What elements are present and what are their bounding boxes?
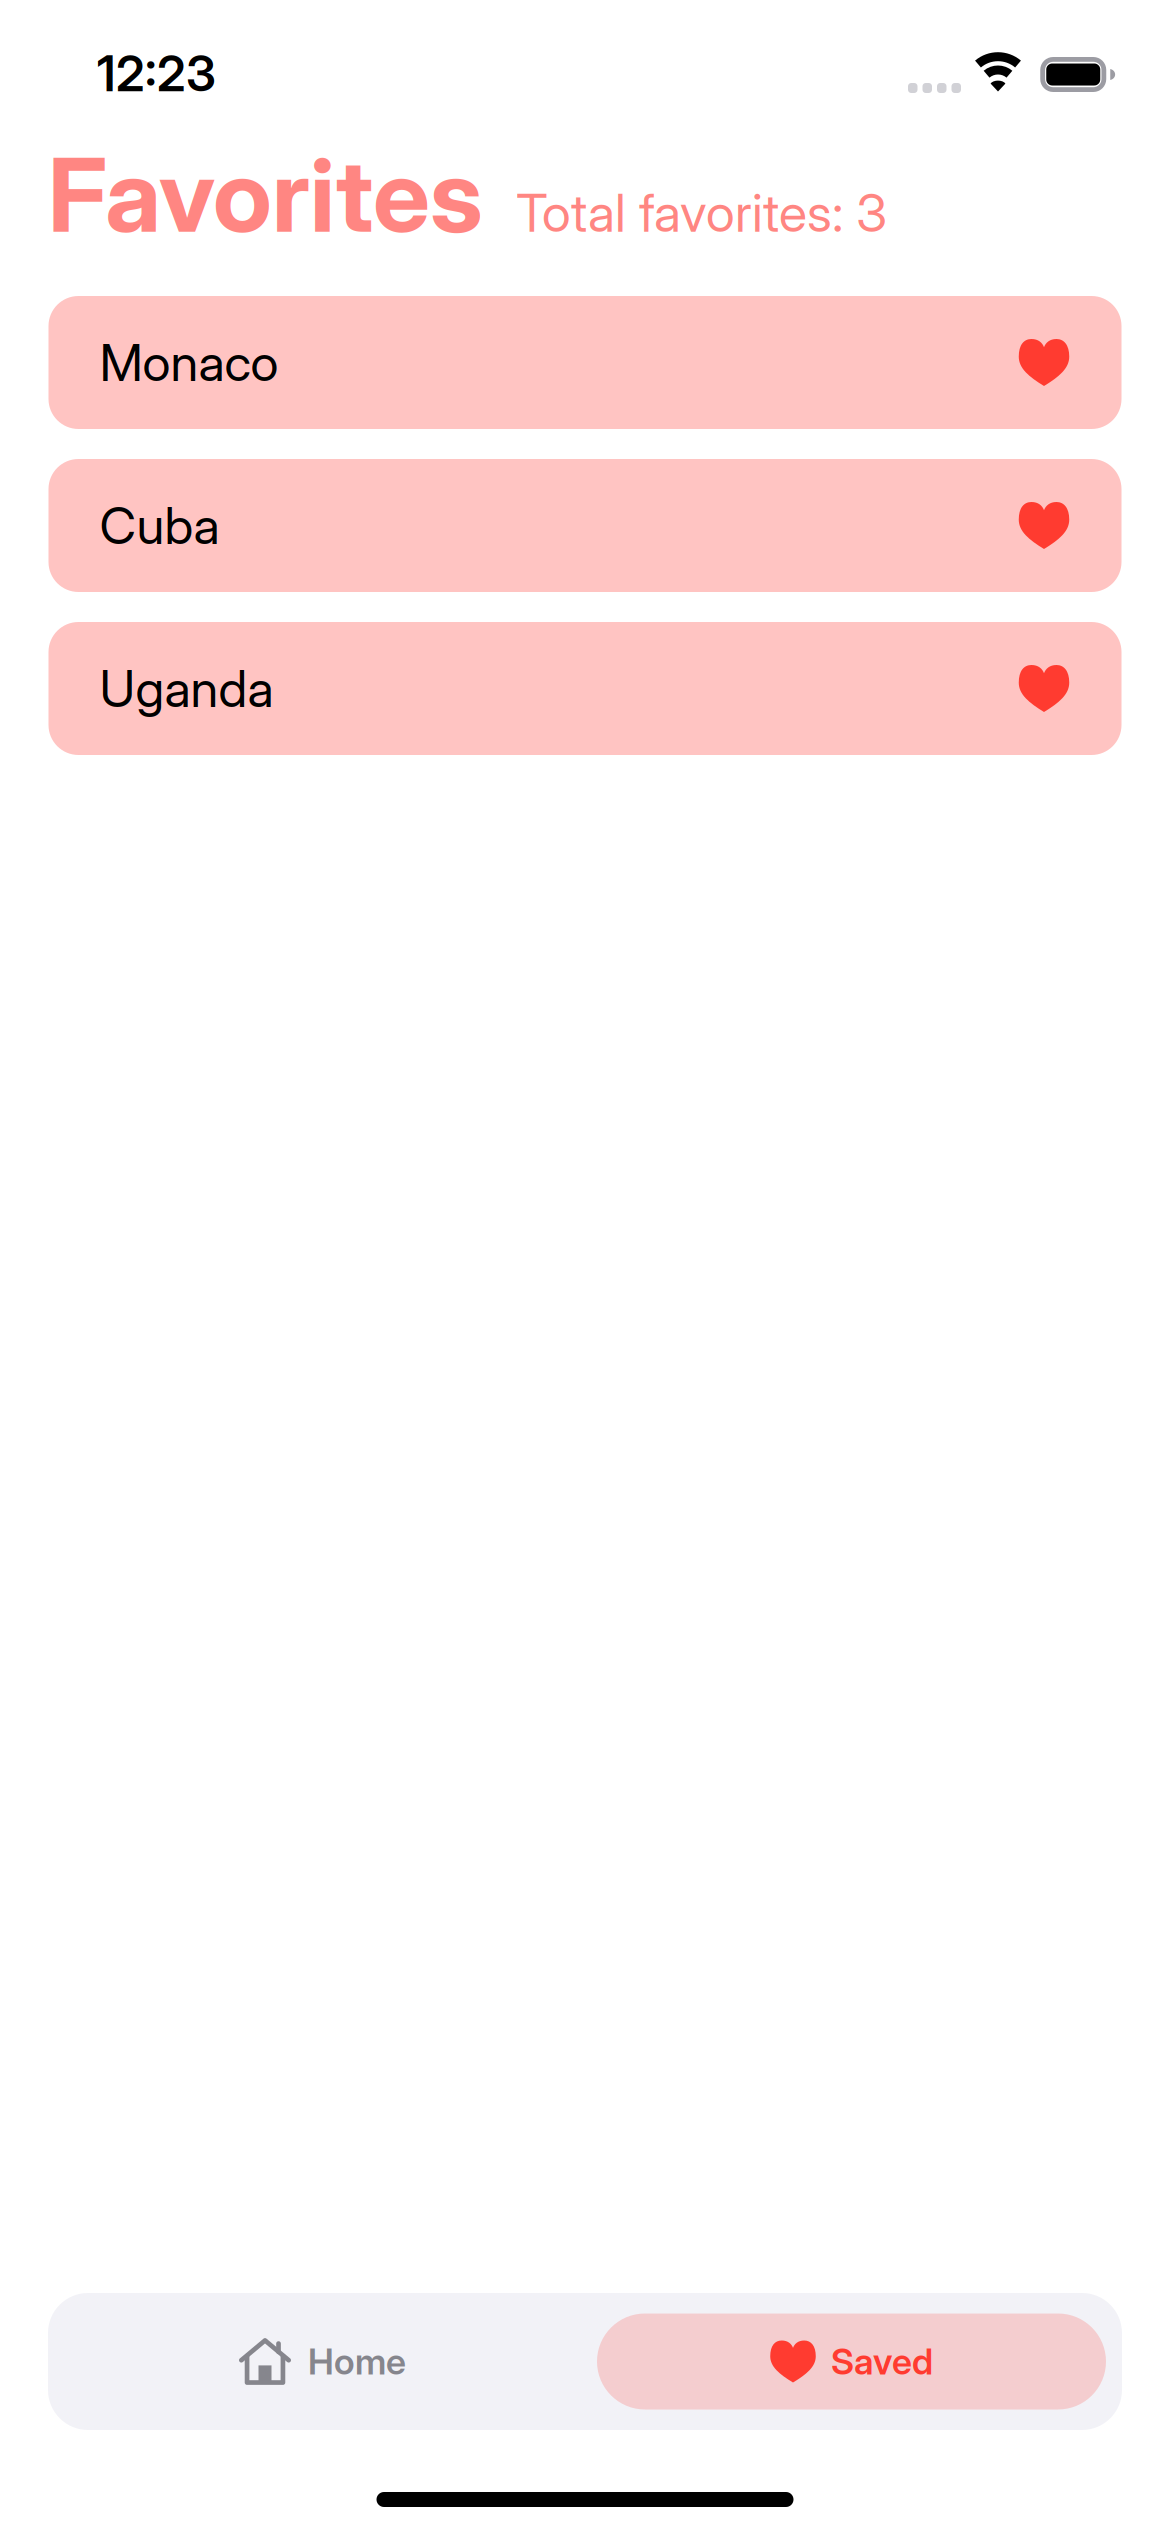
button[interactable]: Unfavorite Monaco: [1018, 339, 1069, 386]
button[interactable]: Saved: [597, 2313, 1106, 2409]
staticText: Uganda: [99, 658, 273, 719]
staticText: Home: [308, 2340, 406, 2383]
staticText: 12:23: [97, 44, 216, 103]
button[interactable]: Home: [48, 2313, 597, 2409]
button[interactable]: Cuba: [48, 459, 1121, 592]
staticText: Saved: [831, 2340, 933, 2383]
staticText: Cuba: [99, 495, 219, 556]
button[interactable]: Unfavorite Cuba: [1018, 502, 1069, 549]
button[interactable]: Uganda: [48, 622, 1121, 755]
staticText: Total favorites: 3: [516, 181, 887, 244]
staticText: Favorites: [48, 134, 483, 256]
button[interactable]: Unfavorite Uganda: [1018, 665, 1069, 712]
staticText: Monaco: [99, 332, 278, 393]
button[interactable]: Monaco: [48, 296, 1121, 429]
